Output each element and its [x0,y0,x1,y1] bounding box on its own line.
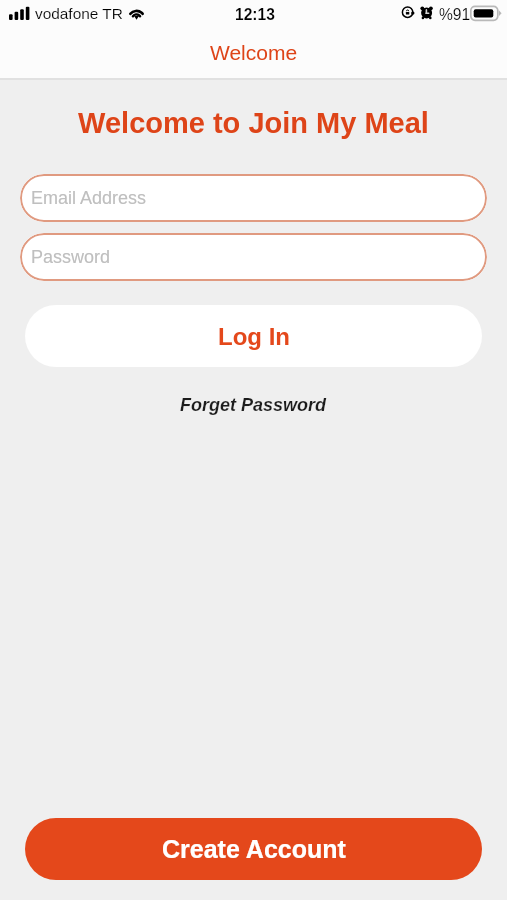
staticText: 12:13 [235,6,275,23]
staticText: Password [31,247,111,267]
staticText: Email Address [31,188,147,208]
button[interactable]: Password [20,233,487,281]
staticText: Create Account [162,835,346,863]
other: Rotation lock [402,3,418,19]
button[interactable]: Email Address [20,174,487,222]
staticText: Welcome to Join My Meal [0,107,507,139]
other: Battery [470,5,501,21]
staticText: %91 [439,6,471,23]
staticText: Welcome [210,41,298,64]
button[interactable]: Forget Password [166,389,341,421]
other: Alarm [421,4,434,20]
staticText: vodafone TR [35,5,123,22]
button[interactable]: Log In [25,305,482,367]
staticText: Forget Password [180,395,327,415]
button[interactable]: Create Account [25,818,482,880]
staticText: Log In [218,323,290,350]
